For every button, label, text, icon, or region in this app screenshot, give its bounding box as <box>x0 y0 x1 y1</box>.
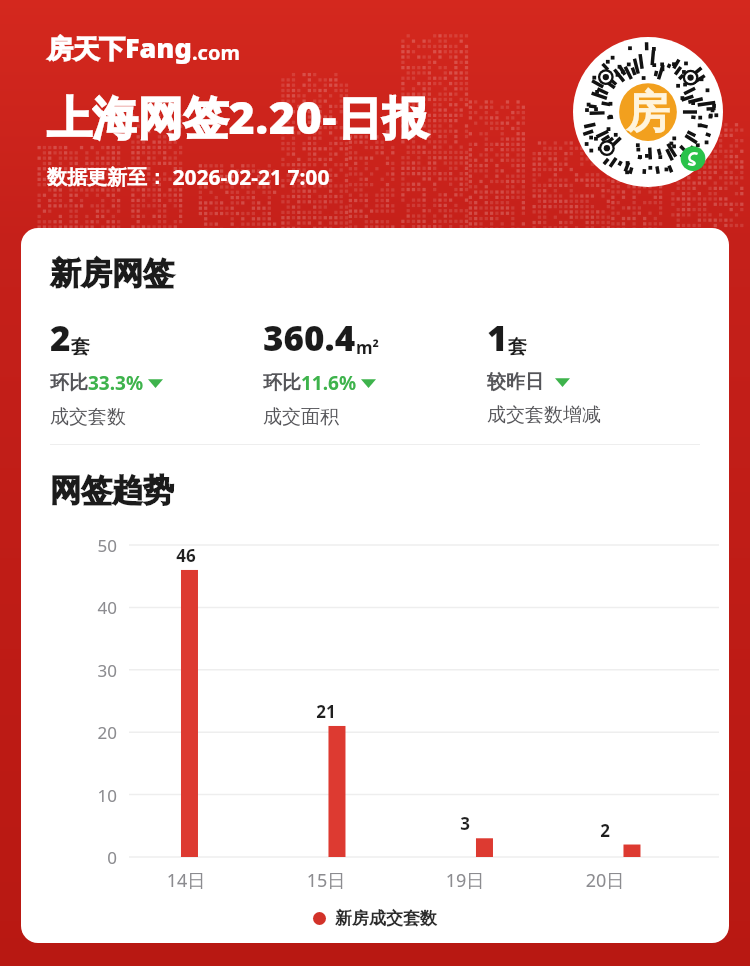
staticText: 2026-02-21 7:00 <box>167 163 330 192</box>
staticText: 成交面积 <box>263 405 339 429</box>
staticText: 较昨日 <box>487 370 544 394</box>
staticText: Fang <box>125 29 192 66</box>
staticText: 房天下 <box>47 33 125 66</box>
staticText: 新房网签 <box>50 254 174 293</box>
staticText: 15日 <box>292 868 360 893</box>
staticText: 2 <box>50 314 71 362</box>
staticText: 14日 <box>152 868 220 893</box>
staticText: m² <box>356 336 380 359</box>
staticText: 上海网签2.20-日报 <box>47 86 428 147</box>
staticText: 新房成交套数 <box>335 908 437 929</box>
staticText: 网签趋势 <box>50 471 174 510</box>
staticText: 环比 <box>50 371 88 395</box>
staticText: 30 <box>81 659 117 682</box>
staticText: 1 <box>487 314 508 362</box>
staticText: 3 <box>443 812 487 835</box>
staticText: 21 <box>304 700 348 723</box>
staticText: 2 <box>583 819 627 842</box>
staticText: 房 <box>626 85 670 140</box>
staticText: 33.3% <box>88 370 144 396</box>
staticText: 成交套数增减 <box>487 403 601 427</box>
staticText: 数据更新至： <box>47 165 167 190</box>
staticText: 环比 <box>263 371 301 395</box>
staticText: 40 <box>81 596 117 619</box>
staticText: .com <box>192 39 240 66</box>
staticText: 360.4 <box>263 314 356 362</box>
staticText: 套 <box>508 335 527 359</box>
staticText: 20 <box>81 721 117 744</box>
staticText: 套 <box>71 335 90 359</box>
button[interactable]: 扫码打开小程序 <box>573 37 723 187</box>
staticText: 50 <box>81 534 117 557</box>
staticText: 46 <box>164 544 208 567</box>
staticText: 20日 <box>571 868 639 893</box>
staticText: 成交套数 <box>50 405 126 429</box>
staticText: 19日 <box>431 868 499 893</box>
staticText: 0 <box>81 846 117 869</box>
staticText: 10 <box>81 784 117 807</box>
staticText: 11.6% <box>301 370 357 396</box>
